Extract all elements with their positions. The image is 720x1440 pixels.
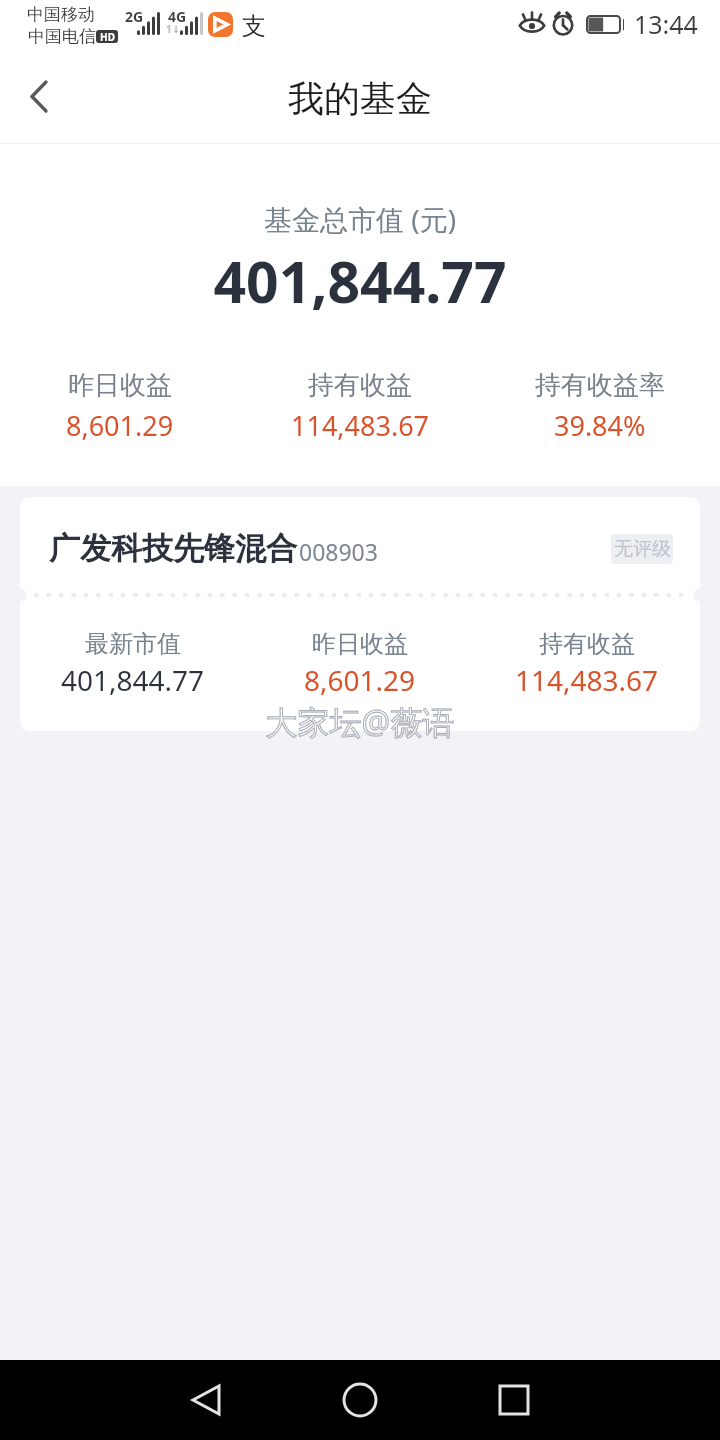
staticText: 基金总市值 (元): [0, 200, 720, 238]
button[interactable]: Home: [324, 1364, 396, 1436]
staticText: 008903: [299, 536, 378, 567]
staticText: 昨日收益: [68, 369, 172, 402]
staticText: 8,601.29: [304, 661, 416, 699]
staticText: 支: [242, 11, 266, 41]
staticText: 中国移动: [27, 4, 95, 25]
staticText: 39.84%: [554, 407, 646, 444]
staticText: HD: [100, 30, 115, 43]
staticText: 8,601.29: [66, 407, 174, 444]
staticText: 401,844.77: [61, 661, 205, 699]
button[interactable]: Back: [4, 61, 74, 131]
staticText: 无评级: [614, 537, 671, 561]
staticText: 2G: [125, 7, 144, 26]
staticText: 持有收益率: [535, 369, 665, 402]
button[interactable]: Recent apps: [478, 1364, 550, 1436]
staticText: 1↓: [166, 22, 181, 36]
staticText: 4G: [168, 7, 187, 26]
staticText: 持有收益: [308, 369, 412, 402]
staticText: 401,844.77: [0, 242, 720, 320]
staticText: 114,483.67: [515, 661, 659, 699]
staticText: 最新市值: [85, 629, 181, 659]
staticText: 昨日收益: [312, 629, 408, 659]
staticText: 中国电信: [28, 26, 96, 47]
button[interactable]: 广发科技先锋混合: [20, 497, 700, 731]
staticText: 13:44: [634, 7, 698, 41]
staticText: 广发科技先锋混合: [49, 529, 297, 568]
button[interactable]: Back: [170, 1364, 242, 1436]
staticText: 114,483.67: [291, 407, 430, 444]
staticText: 持有收益: [539, 629, 635, 659]
staticText: 大家坛@薇语: [0, 700, 720, 744]
staticText: 我的基金: [288, 76, 432, 121]
